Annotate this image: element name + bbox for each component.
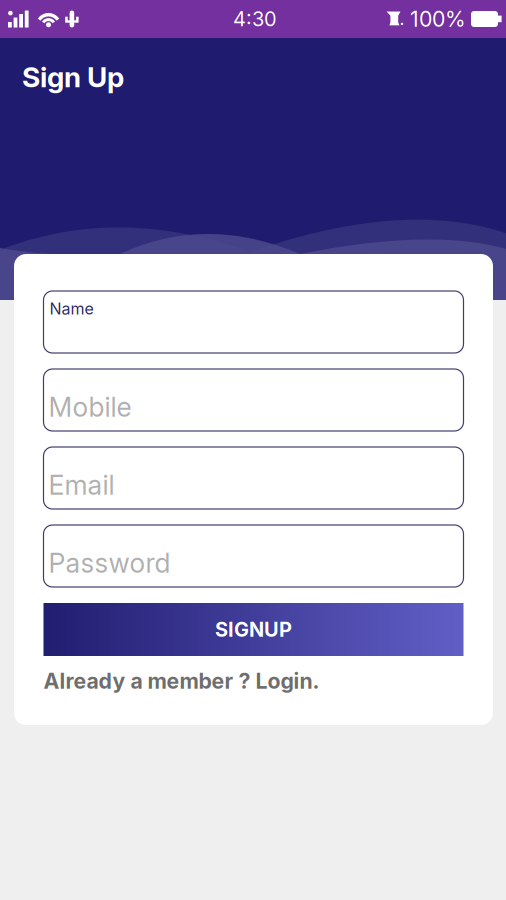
button[interactable]: SIGNUP [43, 603, 463, 656]
staticText: Password [48, 547, 170, 579]
staticText: 100% [410, 6, 466, 32]
staticText: Mobile [48, 391, 131, 423]
button[interactable]: Already a member ? Login. [43, 666, 463, 696]
staticText: Sign Up [22, 60, 124, 94]
staticText: Already a member ? Login. [43, 668, 319, 694]
staticText: Email [48, 469, 114, 501]
staticText: Name [49, 299, 93, 318]
staticText: 4:30 [233, 7, 277, 31]
staticText: SIGNUP [215, 617, 292, 642]
